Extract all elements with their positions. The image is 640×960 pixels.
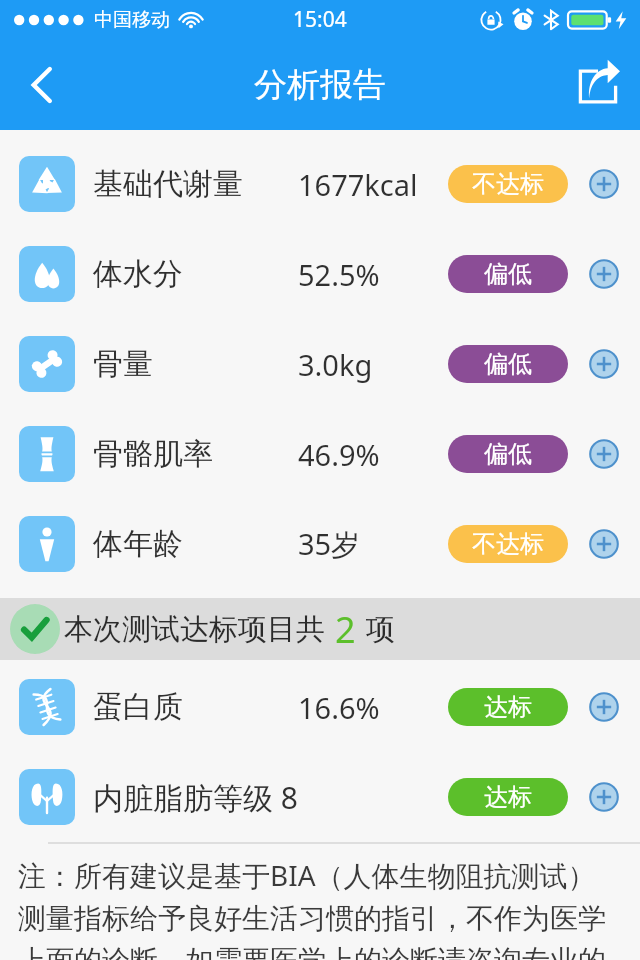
button[interactable]: More info 骨骼肌率 [582,432,626,476]
button[interactable]: 基础代谢量 [0,139,640,229]
staticText: 骨骼肌率 [93,435,213,473]
staticText: 蛋白质 [93,688,183,726]
staticText: 35岁 [298,524,361,564]
staticText: 注：所有建议是基于BIA（人体生物阻抗测试）测量指标给予良好生活习惯的指引，不作… [18,856,622,960]
staticText: 达标 [484,782,532,812]
staticText: 16.6% [298,688,380,727]
staticText: 52.5% [298,255,380,294]
button[interactable]: 骨量 [0,319,640,409]
staticText: 体年龄 [93,525,183,563]
button[interactable]: 不达标 [448,525,568,563]
staticText: 中国移动 [94,8,170,32]
button[interactable]: 偏低 [448,345,568,383]
button[interactable]: 骨骼肌率 [0,409,640,499]
button[interactable]: Share [566,53,630,117]
button[interactable]: 不达标 [448,165,568,203]
button[interactable]: 偏低 [448,255,568,293]
staticText: 骨量 [93,345,153,383]
staticText: 项 [366,611,395,648]
staticText: 偏低 [484,259,532,289]
button[interactable]: 蛋白质 [0,662,640,752]
staticText: 体水分 [93,255,183,293]
staticText: 偏低 [484,439,532,469]
button[interactable]: 体水分 [0,229,640,319]
staticText: 不达标 [472,169,544,199]
button[interactable]: Back [10,53,74,117]
staticText: 46.9% [298,435,380,474]
button[interactable]: 体年龄 [0,499,640,589]
staticText: 3.0kg [298,345,373,384]
staticText: 偏低 [484,349,532,379]
button[interactable]: More info 骨量 [582,342,626,386]
staticText: 分析报告 [254,64,386,106]
button[interactable]: More info 内脏脂肪等级 8 [582,775,626,819]
staticText: 达标 [484,692,532,722]
staticText: 2 [335,605,356,654]
staticText: 1677kcal [298,165,418,204]
button[interactable]: More info 基础代谢量 [582,162,626,206]
button[interactable]: More info 体年龄 [582,522,626,566]
staticText: 本次测试达标项目共 [64,611,325,648]
button[interactable]: 达标 [448,688,568,726]
button[interactable]: 偏低 [448,435,568,473]
staticText: 内脏脂肪等级 8 [93,777,298,818]
button[interactable]: More info 体水分 [582,252,626,296]
button[interactable]: More info 蛋白质 [582,685,626,729]
staticText: 不达标 [472,529,544,559]
button[interactable]: 达标 [448,778,568,816]
staticText: 15:04 [293,5,347,34]
button[interactable]: 本次测试达标项目共 [0,598,640,660]
button[interactable]: 内脏脂肪等级 8 [0,752,640,842]
staticText: 基础代谢量 [93,165,243,203]
